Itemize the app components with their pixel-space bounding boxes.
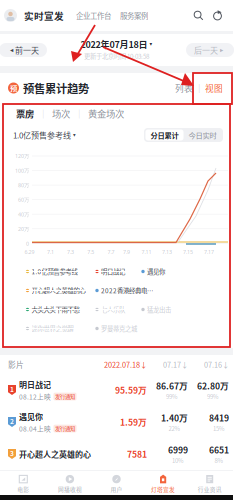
button[interactable]: 视图 — [205, 82, 223, 94]
staticText: 明日战记 — [101, 267, 125, 276]
staticText: 0 — [26, 240, 29, 247]
staticText: 8419 — [209, 411, 229, 424]
staticText: 1 — [10, 384, 14, 394]
staticText: 猛龙出击 — [147, 305, 171, 314]
staticText: 7.9 — [123, 248, 130, 256]
button[interactable]: 07.16↓ — [188, 359, 229, 370]
staticText: | — [197, 83, 201, 93]
staticText: 08.04上映 — [19, 424, 51, 433]
staticText: 99% — [166, 392, 178, 401]
button[interactable]: 电影 — [0, 475, 47, 493]
staticText: 7.5 — [87, 248, 94, 256]
staticText: 07.16↓ — [204, 359, 229, 370]
staticText: 预售累计趋势 — [23, 80, 89, 96]
staticText: 开心超人之英雄的心 — [19, 448, 91, 460]
staticText: 灯塔宣发 — [151, 485, 175, 493]
staticText: 1.40万 — [161, 411, 188, 424]
staticText: | — [77, 108, 81, 119]
button[interactable]: 今日实时 — [183, 129, 221, 140]
staticText: 7.11 — [141, 248, 151, 256]
button[interactable]: 1.0亿预售参考线 — [13, 129, 76, 141]
button[interactable]: 2022.07.18↓ — [100, 359, 147, 370]
staticText: 网播收视 — [58, 485, 82, 493]
button[interactable]: 实时宣发 — [17, 8, 64, 22]
staticText: 2022香港经典电… — [101, 286, 153, 295]
staticText: 3 — [10, 448, 14, 458]
staticText: 票房 — [16, 107, 34, 120]
button[interactable]: 列表 — [175, 82, 193, 94]
staticText: 7581 — [127, 448, 147, 460]
staticText: 2022.07.18↓ — [104, 359, 147, 370]
button[interactable]: 网播收视 — [47, 475, 93, 493]
staticText: 更新于北京时间 10:03:58 — [84, 51, 149, 61]
staticText: 发行通知 — [55, 393, 75, 400]
button[interactable]: 用户 — [93, 475, 140, 493]
staticText: 7.1 — [47, 248, 54, 256]
button[interactable]: 2 — [0, 406, 233, 438]
staticText: 120万 — [15, 152, 29, 160]
staticText: 行业资讯 — [198, 485, 222, 493]
staticText: 6651 — [209, 443, 229, 456]
staticText: 7.17 — [204, 248, 214, 256]
button[interactable]: Refresh — [204, 10, 223, 21]
staticText: 迷你世界之觉醒 — [31, 324, 73, 333]
staticText: 开心超人之英雄的心 — [31, 286, 85, 295]
staticText: 20万 — [18, 225, 29, 233]
button[interactable]: 灯塔宣发 — [140, 475, 186, 493]
staticText: 08.12上映 — [19, 392, 51, 401]
button[interactable]: 服务案例 — [111, 10, 148, 21]
button[interactable]: 3 — [0, 438, 233, 470]
staticText: ◂ — [10, 46, 13, 54]
button[interactable]: 2022年07月18日 — [80, 37, 152, 50]
button[interactable]: 黄金场次 — [88, 107, 124, 120]
staticText: 企业工作台 — [76, 10, 111, 21]
staticText: 7.3 — [67, 248, 74, 256]
staticText: 影片 — [8, 359, 24, 370]
staticText: 1.0亿预售参考线 — [31, 267, 77, 276]
staticText: 分日累计 — [150, 130, 178, 140]
button[interactable]: 企业工作台 — [64, 10, 111, 21]
staticText: 7.15 — [183, 248, 193, 256]
button[interactable]: 场次 — [52, 107, 70, 120]
button[interactable]: 票房 — [16, 107, 34, 120]
staticText: 2022年07月18日 — [80, 37, 147, 50]
staticText: 40万 — [18, 211, 29, 218]
button[interactable]: 分日累计 — [145, 129, 183, 140]
staticText: 视图 — [205, 82, 223, 94]
button[interactable]: ◂ — [5, 43, 53, 57]
staticText: 明日战记 — [19, 379, 51, 390]
button[interactable]: Search — [193, 10, 204, 21]
staticText: 列表 — [175, 82, 193, 94]
staticText: 黄金场次 — [88, 107, 124, 120]
staticText: 7.13 — [162, 248, 172, 256]
staticText: 遇见你 — [19, 411, 43, 422]
staticText: 15% — [213, 424, 225, 433]
staticText: | — [41, 108, 45, 119]
staticText: 今日实时 — [188, 130, 216, 140]
staticText: 6999 — [168, 443, 188, 456]
staticText: 后一天 — [194, 44, 218, 56]
staticText: 服务案例 — [120, 10, 148, 21]
button[interactable]: Profile — [4, 9, 17, 22]
staticText: 前一天 — [15, 44, 39, 56]
staticText: 用户 — [110, 485, 122, 493]
staticText: 2 — [10, 416, 14, 426]
staticText: 七人乐队 — [101, 305, 125, 314]
staticText: 遇见你 — [147, 267, 165, 276]
staticText: ▾ — [149, 41, 152, 47]
staticText: 6.29 — [24, 248, 34, 256]
staticText: ▾ — [73, 132, 76, 138]
staticText: 8% — [214, 456, 223, 465]
button[interactable]: 1 — [0, 374, 233, 406]
staticText: 07.17↓ — [163, 359, 188, 370]
staticText: 场次 — [52, 107, 70, 120]
staticText: ▸ — [220, 46, 223, 54]
staticText: 预 — [10, 83, 17, 93]
button[interactable]: 后一天 — [180, 43, 228, 57]
staticText: 95.59万 — [115, 384, 147, 396]
staticText: 99% — [207, 392, 219, 401]
button[interactable]: 行业资讯 — [186, 475, 233, 493]
staticText: 100万 — [15, 167, 29, 174]
staticText: 1.0亿预售参考线 — [13, 129, 71, 141]
button[interactable]: 07.17↓ — [147, 359, 188, 370]
